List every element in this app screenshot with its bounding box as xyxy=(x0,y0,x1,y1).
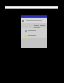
button[interactable] xyxy=(21,33,47,38)
button[interactable] xyxy=(21,15,47,18)
button[interactable] xyxy=(5,6,58,9)
button[interactable] xyxy=(21,28,47,33)
